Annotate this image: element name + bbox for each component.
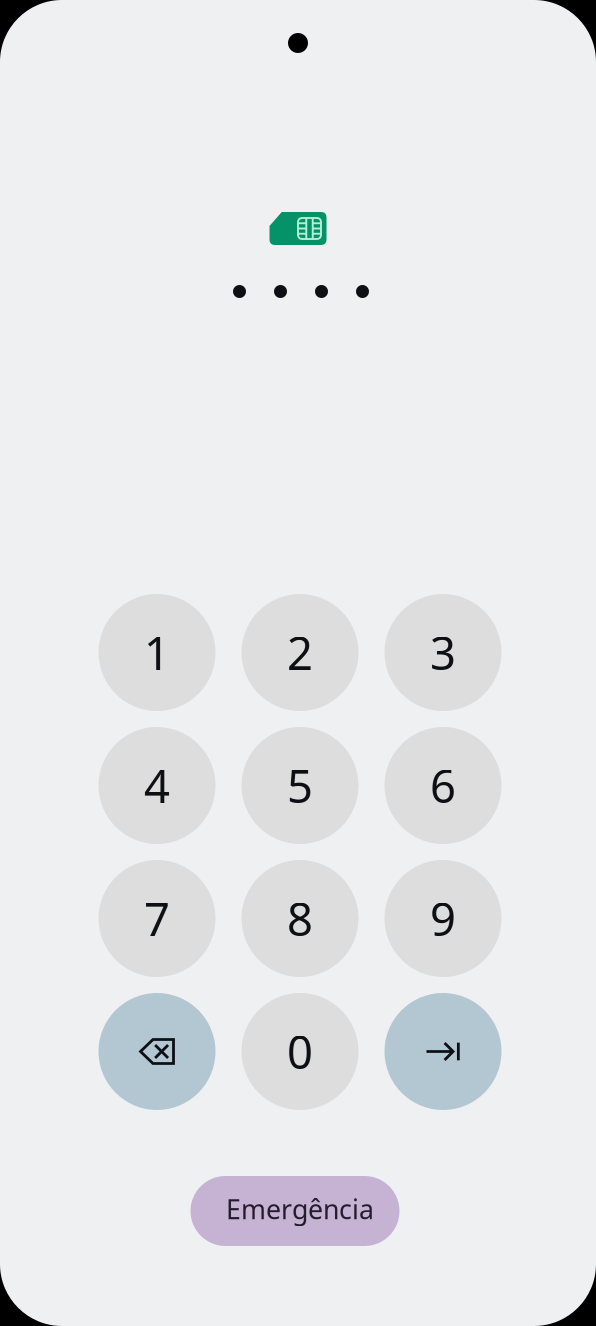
button[interactable]: Emergência	[190, 1176, 399, 1246]
button[interactable]: 2	[241, 594, 358, 711]
staticText: 0	[287, 1021, 313, 1082]
staticText: 1	[144, 622, 170, 683]
button[interactable]: 9	[384, 860, 501, 977]
button[interactable]: 7	[98, 860, 215, 977]
button[interactable]: 6	[384, 727, 501, 844]
staticText: 6	[430, 755, 456, 816]
button[interactable]: 0	[241, 993, 358, 1110]
button[interactable]: 8	[241, 860, 358, 977]
staticText: Emergência	[226, 1191, 374, 1227]
button[interactable]: 1	[98, 594, 215, 711]
staticText: 4	[144, 755, 170, 816]
staticText: 5	[287, 755, 313, 816]
staticText: 7	[144, 888, 170, 949]
button[interactable]: 5	[241, 727, 358, 844]
staticText: 2	[287, 622, 313, 683]
staticText: 9	[430, 888, 456, 949]
button[interactable]: 4	[98, 727, 215, 844]
button[interactable]: Backspace	[98, 993, 215, 1110]
staticText: 3	[430, 622, 456, 683]
staticText: 8	[287, 888, 313, 949]
button[interactable]: 3	[384, 594, 501, 711]
button[interactable]: Enter	[384, 993, 501, 1110]
